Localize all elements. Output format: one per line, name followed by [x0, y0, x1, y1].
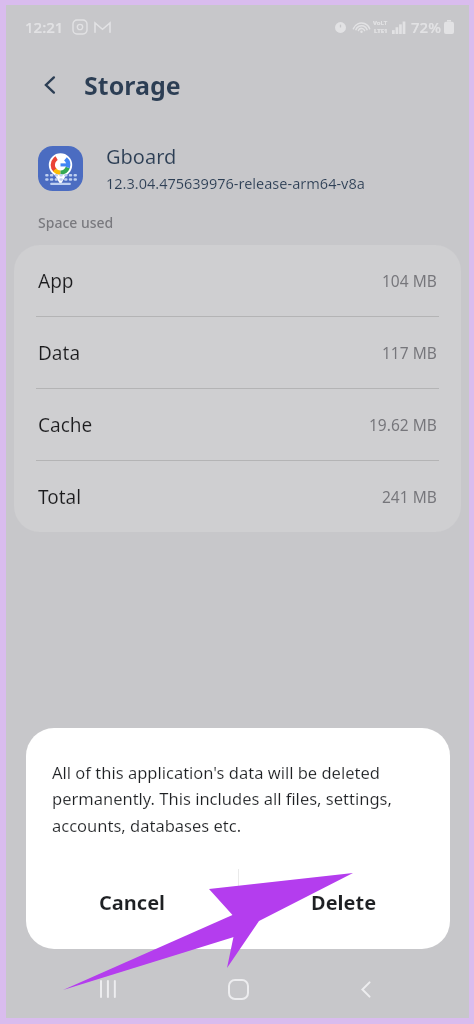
staticText: Gboard: [106, 143, 177, 170]
staticText: 19.62 MB: [369, 414, 437, 435]
button[interactable]: Delete: [238, 863, 450, 941]
staticText: Total: [38, 484, 82, 510]
button[interactable]: Back: [34, 68, 68, 102]
staticText: 104 MB: [382, 270, 437, 291]
staticText: Space used: [38, 213, 114, 232]
staticText: Cancel: [99, 889, 166, 916]
staticText: Clear data: [109, 900, 188, 922]
staticText: Storage: [84, 68, 181, 102]
staticText: VoLT: [373, 19, 388, 27]
staticText: LTE1: [374, 27, 388, 35]
button[interactable]: Back: [340, 963, 392, 1015]
staticText: 241 MB: [382, 486, 437, 507]
staticText: 117 MB: [382, 342, 437, 363]
button[interactable]: Recents: [83, 963, 135, 1015]
button[interactable]: App: [14, 245, 461, 316]
button[interactable]: Data: [14, 317, 461, 388]
staticText: All of this application's data will be d…: [52, 761, 428, 837]
button[interactable]: Total: [14, 461, 461, 532]
staticText: Delete: [311, 889, 377, 916]
button[interactable]: Home: [212, 963, 264, 1015]
staticText: 12.3.04.475639976-release-arm64-v8a: [106, 173, 365, 193]
staticText: Cache: [38, 412, 93, 438]
staticText: Data: [38, 340, 81, 366]
staticText: 72%: [411, 17, 441, 37]
button[interactable]: Cancel: [26, 863, 238, 941]
button[interactable]: Cache: [14, 389, 461, 460]
staticText: Clear cache: [278, 900, 366, 922]
staticText: 12:21: [25, 17, 64, 37]
staticText: App: [38, 268, 74, 294]
